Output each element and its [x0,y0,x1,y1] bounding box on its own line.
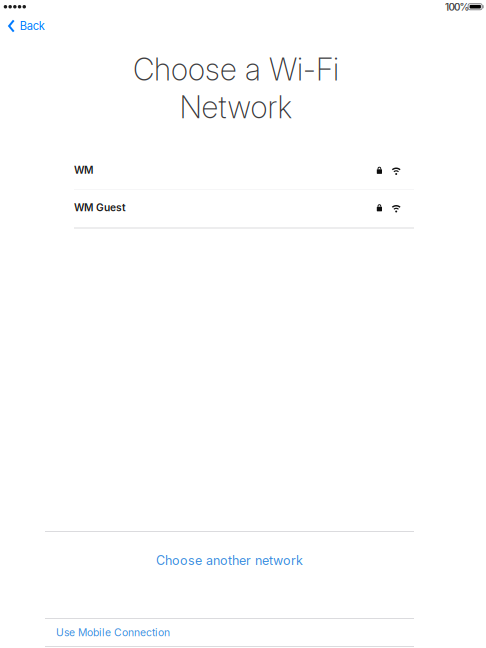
staticText: Choose another network [156,553,303,568]
staticText: Network [179,89,292,126]
button[interactable]: WM [45,152,414,189]
staticText: WM Guest [74,201,126,214]
staticText: Use Mobile Connection [56,626,170,639]
staticText: Choose a Wi-Fi [133,51,339,88]
button[interactable]: Use Mobile Connection [45,619,414,646]
button[interactable]: WM Guest [45,189,414,227]
staticText: WM [74,164,93,176]
staticText: Back [20,19,45,33]
button[interactable]: Choose another network [45,532,414,589]
button[interactable]: Back [8,14,62,38]
staticText: 100% [445,1,469,13]
